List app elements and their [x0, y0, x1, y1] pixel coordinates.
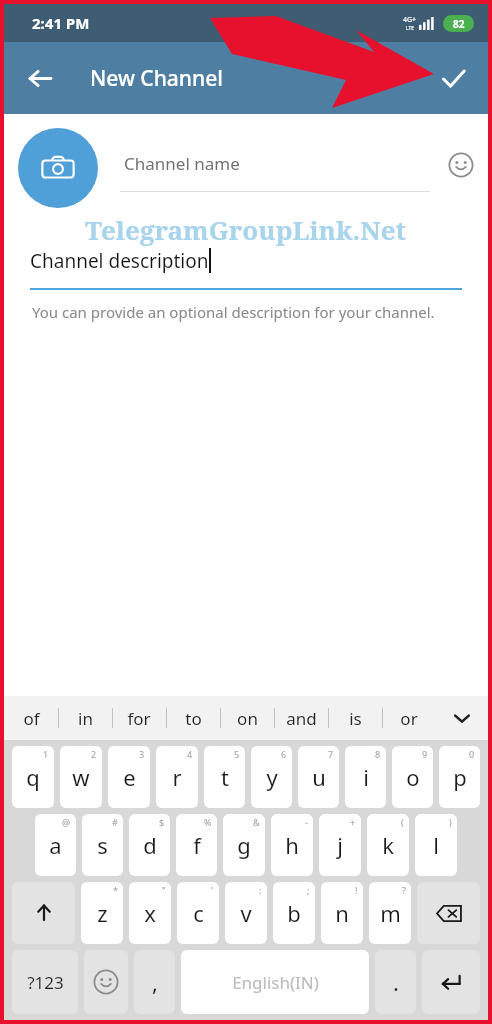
button[interactable]: Emoji [442, 146, 480, 184]
staticText: @ [62, 816, 71, 828]
button[interactable]: o [392, 746, 433, 808]
button[interactable]: e [108, 746, 150, 808]
staticText: p [453, 762, 467, 792]
button[interactable]: x [129, 882, 171, 944]
button[interactable]: is [328, 696, 382, 740]
button[interactable]: Done [430, 55, 476, 101]
staticText: Channel description [30, 248, 209, 274]
staticText: English(IN) [232, 971, 319, 994]
button[interactable]: Shift [12, 882, 75, 944]
button[interactable]: l [415, 814, 457, 876]
staticText: on [237, 707, 258, 730]
button[interactable]: t [204, 746, 245, 808]
staticText: 0 [469, 748, 475, 760]
staticText: 3 [139, 748, 145, 760]
button[interactable]: Backspace [417, 882, 480, 944]
button[interactable]: Close suggestions [436, 696, 488, 740]
button[interactable]: Set channel photo [18, 128, 98, 208]
staticText: : [259, 884, 262, 896]
button[interactable]: y [251, 746, 292, 808]
button[interactable]: n [321, 882, 363, 944]
staticText: 8 [375, 748, 381, 760]
button[interactable]: Channel name [120, 130, 430, 192]
button[interactable]: w [60, 746, 102, 808]
staticText: i [363, 762, 369, 792]
button[interactable]: Channel description [30, 248, 462, 290]
staticText: y [266, 762, 278, 792]
staticText: - [305, 816, 308, 828]
staticText: g [237, 830, 251, 860]
button[interactable]: z [81, 882, 123, 944]
staticText: or [400, 707, 418, 730]
button[interactable]: on [220, 696, 274, 740]
button[interactable]: Enter [422, 950, 480, 1014]
staticText: + [350, 816, 356, 828]
button[interactable]: b [273, 882, 315, 944]
button[interactable]: u [298, 746, 339, 808]
staticText: & [253, 816, 260, 828]
button[interactable]: . [375, 950, 416, 1014]
staticText: " [162, 884, 166, 896]
button[interactable]: , [134, 950, 175, 1014]
staticText: TelegramGroupLink.Net [85, 212, 407, 247]
staticText: 1 [43, 748, 49, 760]
button[interactable]: to [166, 696, 220, 740]
staticText: z [97, 898, 108, 928]
button[interactable]: in [58, 696, 112, 740]
button[interactable]: g [223, 814, 265, 876]
button[interactable]: m [369, 882, 411, 944]
staticText: for [127, 707, 151, 730]
button[interactable]: q [12, 746, 54, 808]
staticText: ' [211, 884, 214, 896]
staticText: a [49, 830, 62, 860]
staticText: , [152, 967, 158, 997]
staticText: ! [355, 884, 358, 896]
button[interactable]: s [82, 814, 123, 876]
staticText: ? [402, 884, 406, 896]
button[interactable]: j [319, 814, 361, 876]
button[interactable]: of [4, 696, 58, 740]
button[interactable]: for [112, 696, 166, 740]
button[interactable]: and [274, 696, 328, 740]
staticText: v [240, 898, 252, 928]
staticText: $ [159, 816, 165, 828]
button[interactable]: p [439, 746, 480, 808]
button[interactable]: Emoji [84, 950, 128, 1014]
staticText: 4 [187, 748, 193, 760]
staticText: b [287, 898, 301, 928]
staticText: 82 [453, 17, 465, 31]
staticText: o [406, 762, 420, 792]
staticText: d [143, 830, 157, 860]
staticText: and [286, 707, 317, 730]
button[interactable]: i [345, 746, 386, 808]
staticText: h [285, 830, 299, 860]
staticText: ; [307, 884, 310, 896]
staticText: q [26, 762, 40, 792]
button[interactable]: k [367, 814, 409, 876]
staticText: k [382, 830, 394, 860]
button[interactable]: h [271, 814, 313, 876]
staticText: 7 [328, 748, 334, 760]
button[interactable]: a [35, 814, 76, 876]
staticText: l [433, 830, 439, 860]
staticText: r [172, 762, 182, 792]
button[interactable]: Back [16, 55, 62, 101]
button[interactable]: v [225, 882, 267, 944]
staticText: e [123, 762, 136, 792]
button[interactable]: ?123 [12, 950, 78, 1014]
staticText: 2:41 PM [32, 13, 90, 33]
staticText: j [337, 830, 343, 860]
staticText: 6 [281, 748, 287, 760]
staticText: New Channel [90, 64, 223, 93]
button[interactable]: f [176, 814, 217, 876]
staticText: % [204, 816, 212, 828]
staticText: c [193, 898, 204, 928]
staticText: t [221, 762, 229, 792]
staticText: x [144, 898, 156, 928]
button[interactable]: or [382, 696, 436, 740]
button[interactable]: r [156, 746, 198, 808]
button[interactable]: d [129, 814, 170, 876]
button[interactable]: c [177, 882, 219, 944]
staticText: f [193, 830, 201, 860]
button[interactable]: English(IN) [181, 950, 369, 1014]
